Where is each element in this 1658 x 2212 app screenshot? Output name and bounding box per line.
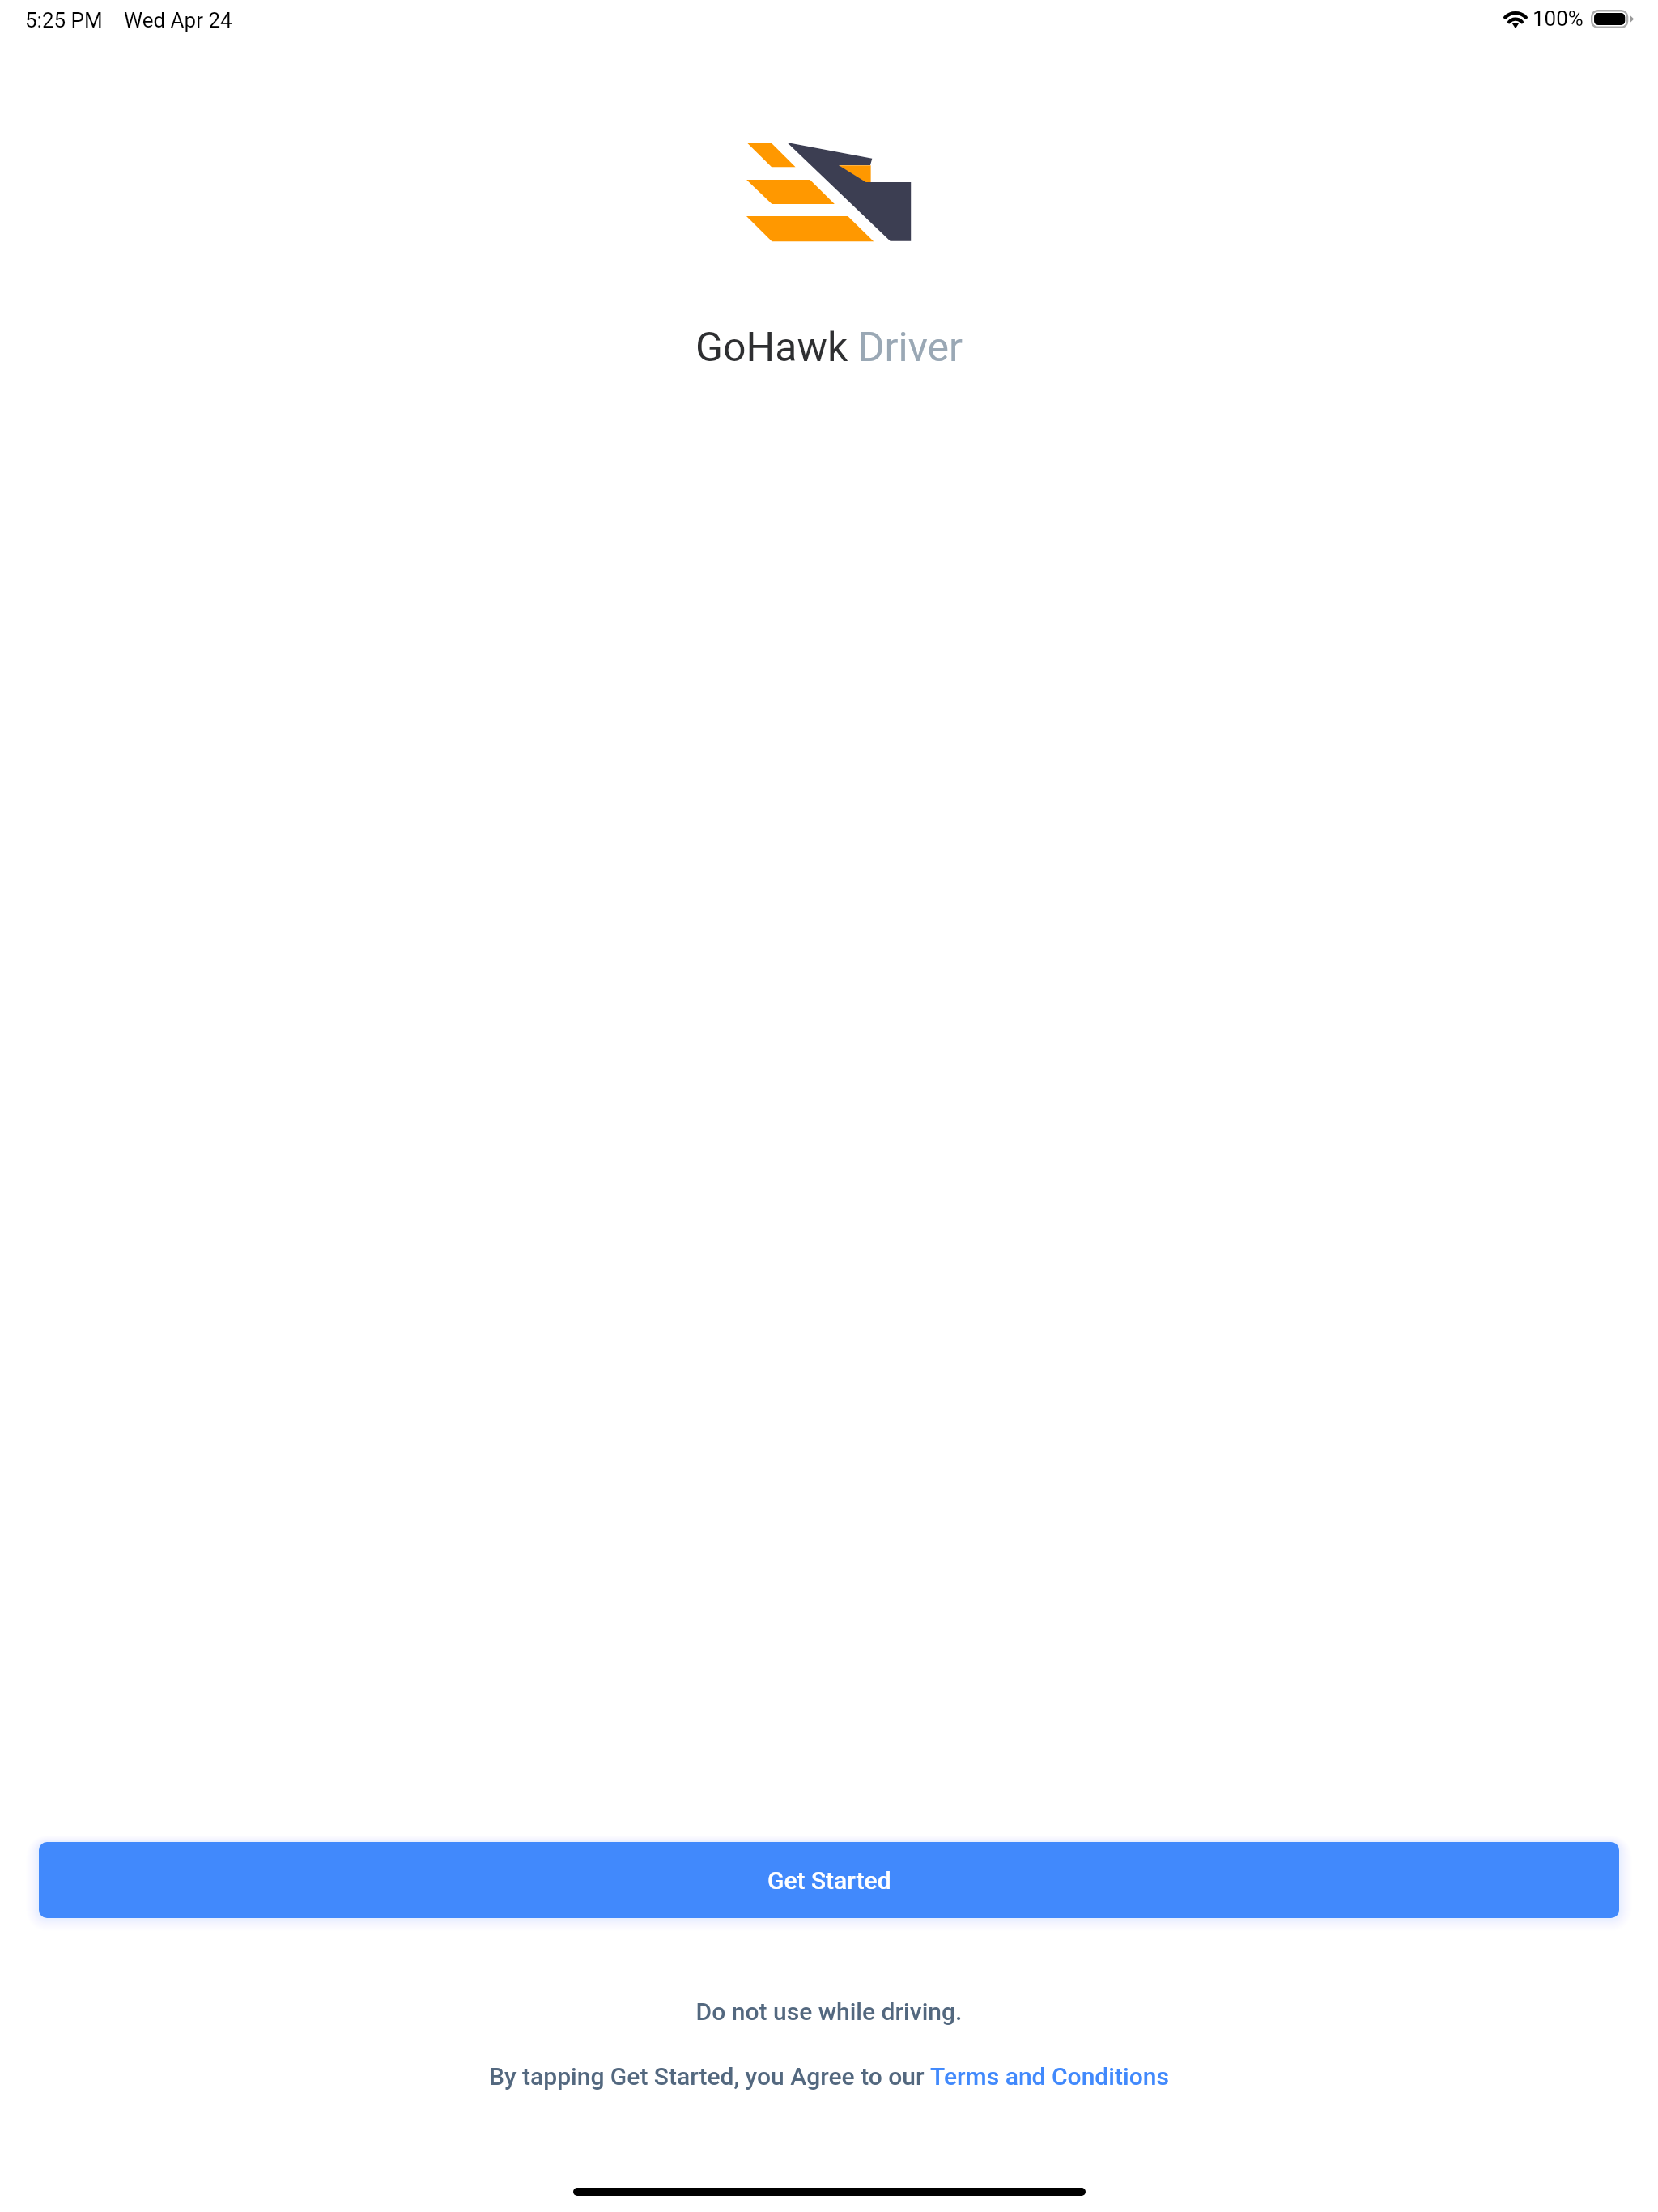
staticText: Wed Apr 24 <box>124 8 232 32</box>
button[interactable]: Terms and Conditions <box>930 2062 1169 2091</box>
staticText: GoHawk Driver <box>695 324 963 372</box>
button[interactable]: Get Started <box>39 1842 1619 1918</box>
staticText: By tapping Get Started, you Agree to our <box>489 2062 930 2091</box>
other: Wi-Fi <box>1504 11 1527 29</box>
staticText: Terms and Conditions <box>930 2062 1169 2091</box>
staticText: Get Started <box>767 1866 891 1895</box>
staticText: 5:25 PM <box>25 8 103 32</box>
other: Battery 100 percent <box>1591 10 1634 28</box>
staticText: Do not use while driving. <box>0 1997 1658 2026</box>
staticText: 100% <box>1533 6 1584 31</box>
